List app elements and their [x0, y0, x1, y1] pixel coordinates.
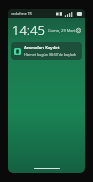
staticText: Aramaları Kaydet: [24, 45, 60, 51]
staticText: Cuma, 29 Mart: [48, 28, 76, 33]
staticText: vodafone TR: [11, 11, 32, 16]
button[interactable]: Settings: [76, 26, 81, 35]
staticText: 14:45: [12, 21, 45, 39]
button[interactable]: Aramaları Kaydet: [11, 42, 82, 60]
staticText: Hizmet bugün 08:50'de başladı: [24, 52, 76, 57]
